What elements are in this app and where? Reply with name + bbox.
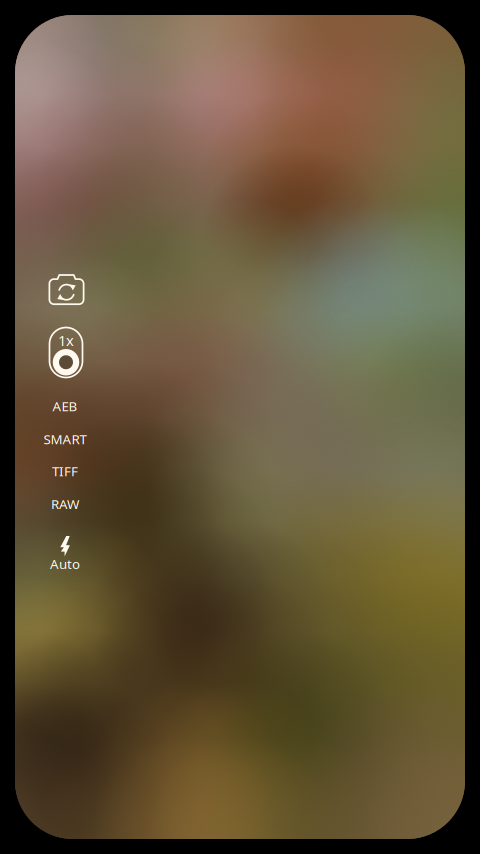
staticText: 1x [58,330,74,350]
button[interactable]: AEB [15,395,115,417]
staticText: Auto [50,555,80,573]
button[interactable]: SMART [15,428,115,450]
button[interactable]: TIFF [15,460,115,482]
button[interactable]: RAW [15,493,115,515]
staticText: AEB [52,397,77,415]
button[interactable]: Switch camera [15,274,115,305]
button[interactable]: Zoom, 1x [15,327,115,378]
button[interactable]: Auto [15,536,115,573]
staticText: TIFF [52,462,78,480]
staticText: SMART [43,430,86,448]
staticText: RAW [51,495,79,513]
